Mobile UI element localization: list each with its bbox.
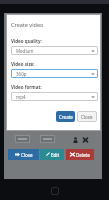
button[interactable]: 360p bbox=[11, 69, 98, 78]
staticText: mp4 bbox=[16, 94, 26, 100]
button[interactable]: Close bbox=[8, 149, 39, 160]
staticText: Close bbox=[81, 114, 93, 120]
button[interactable]: Account bbox=[73, 137, 78, 143]
button[interactable]: Toolbar button bbox=[40, 135, 55, 143]
staticText: Video quality: bbox=[11, 38, 42, 44]
button[interactable]: Close bbox=[77, 111, 97, 122]
button[interactable]: Toolbar button bbox=[15, 135, 30, 143]
staticText: Close bbox=[21, 152, 33, 158]
button[interactable]: Close bbox=[83, 137, 88, 143]
button[interactable]: Medium bbox=[11, 46, 98, 55]
button[interactable]: Home bbox=[51, 187, 59, 195]
staticText: Medium bbox=[16, 48, 34, 54]
staticText: 360p bbox=[16, 71, 27, 77]
staticText: Create bbox=[59, 114, 73, 120]
button[interactable]: Create bbox=[56, 111, 75, 122]
staticText: Edit bbox=[51, 152, 60, 158]
staticText: Video size: bbox=[11, 61, 35, 67]
staticText: Delete bbox=[76, 152, 90, 158]
button[interactable]: mp4 bbox=[11, 92, 98, 101]
button[interactable]: Edit bbox=[40, 149, 64, 160]
button[interactable]: Create video bbox=[11, 21, 44, 28]
staticText: Video format: bbox=[11, 84, 42, 90]
button[interactable]: Delete bbox=[66, 149, 94, 160]
